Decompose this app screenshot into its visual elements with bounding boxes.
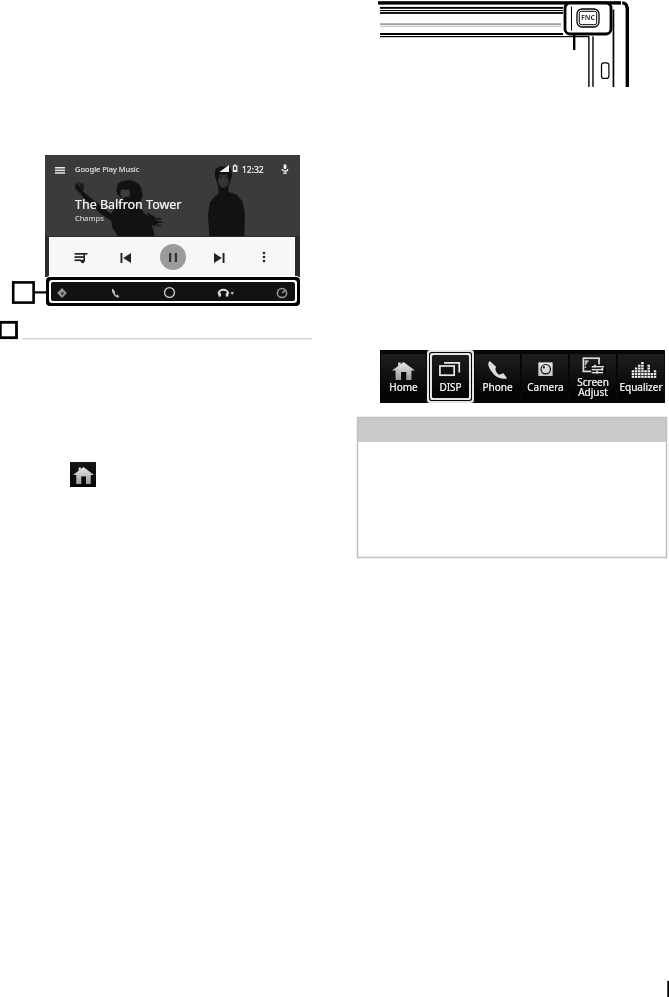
button[interactable]: Home bbox=[160, 283, 179, 302]
staticText: Equalizer bbox=[619, 380, 663, 394]
button[interactable]: Previous bbox=[107, 238, 145, 277]
staticText: Screen Adjust bbox=[577, 375, 609, 399]
button[interactable]: Navigation bbox=[53, 283, 71, 302]
button[interactable]: Equalizer bbox=[617, 350, 665, 403]
button[interactable]: Phone bbox=[474, 350, 521, 403]
button[interactable]: DISP bbox=[427, 350, 474, 403]
button[interactable]: More options bbox=[245, 237, 283, 276]
staticText: 12:32 bbox=[242, 164, 264, 176]
button[interactable]: Recent bbox=[273, 283, 291, 302]
staticText: Google Play Music bbox=[75, 164, 140, 174]
button[interactable]: Phone bbox=[107, 283, 124, 302]
button[interactable]: Camera bbox=[521, 350, 569, 403]
staticText: DISP bbox=[439, 380, 462, 394]
button[interactable]: Home bbox=[70, 462, 96, 487]
staticText: Phone bbox=[482, 380, 513, 394]
button[interactable]: Pause bbox=[160, 244, 186, 270]
button[interactable]: Voice search bbox=[281, 164, 289, 174]
button[interactable]: Menu bbox=[55, 167, 65, 173]
button[interactable]: Home bbox=[380, 350, 427, 403]
staticText: Camera bbox=[527, 380, 564, 394]
button[interactable]: Queue bbox=[62, 238, 100, 277]
staticText: FNC bbox=[581, 13, 596, 23]
staticText: Champs bbox=[75, 213, 104, 223]
staticText: Home bbox=[389, 380, 418, 394]
button[interactable]: Audio source bbox=[214, 283, 237, 302]
staticText: The Balfron Tower bbox=[75, 196, 182, 213]
button[interactable]: Next bbox=[200, 238, 238, 277]
button[interactable]: Screen Adjust bbox=[569, 350, 617, 403]
